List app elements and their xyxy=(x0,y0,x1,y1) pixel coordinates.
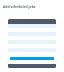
button[interactable] xyxy=(10,57,54,60)
staticText: Add scheduled jobs xyxy=(3,4,36,9)
